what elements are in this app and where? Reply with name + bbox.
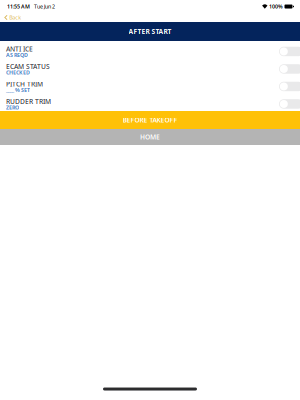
button[interactable]: BEFORE TAKEOFF xyxy=(0,111,300,129)
staticText: AFTER START xyxy=(128,27,171,36)
button[interactable]: PITCH TRIM xyxy=(0,76,300,93)
staticText: AS REQD xyxy=(6,51,28,58)
staticText: BEFORE TAKEOFF xyxy=(122,116,177,124)
button[interactable]: ECAM STATUS xyxy=(0,58,300,76)
staticText: CHECKED xyxy=(6,69,30,76)
staticText: ZERO xyxy=(6,104,19,111)
staticText: 100% xyxy=(269,3,283,10)
staticText: PITCH TRIM xyxy=(6,79,43,88)
staticText: ANTI ICE xyxy=(6,44,33,53)
staticText: Back xyxy=(9,14,21,21)
staticText: RUDDER TRIM xyxy=(6,97,51,106)
button[interactable]: HOME xyxy=(0,129,300,145)
staticText: Tue Jun 2 xyxy=(34,3,55,10)
staticText: ____ % SET xyxy=(6,86,30,93)
staticText: 11:55 AM xyxy=(7,3,30,10)
staticText: ECAM STATUS xyxy=(6,62,50,71)
staticText: HOME xyxy=(140,133,160,141)
button[interactable]: RUDDER TRIM xyxy=(0,93,300,111)
button[interactable]: ANTI ICE xyxy=(0,41,300,58)
button[interactable]: Back xyxy=(0,13,21,22)
